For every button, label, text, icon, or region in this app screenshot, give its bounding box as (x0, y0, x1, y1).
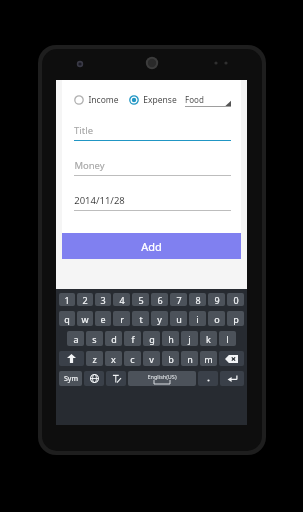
button[interactable]: c (124, 351, 141, 366)
staticText: j (188, 333, 191, 345)
staticText: u (176, 313, 182, 325)
button[interactable]: b (162, 351, 179, 366)
button[interactable]: s (86, 331, 103, 346)
button[interactable]: z (86, 351, 103, 366)
staticText: t (139, 313, 143, 325)
staticText: i (196, 313, 199, 325)
staticText: y (157, 313, 162, 325)
button[interactable]: Backspace (219, 351, 244, 366)
button[interactable]: y (151, 311, 168, 326)
staticText: z (92, 353, 97, 365)
staticText: k (206, 333, 211, 345)
staticText: f (131, 333, 135, 345)
staticText: l (226, 333, 229, 345)
button[interactable]: v (143, 351, 160, 366)
staticText: 5 (138, 294, 144, 306)
button[interactable]: 7 (170, 293, 187, 306)
staticText: 2 (82, 294, 88, 306)
button[interactable]: Handwriting (106, 371, 126, 386)
staticText: g (149, 333, 155, 345)
staticText: q (64, 313, 70, 325)
staticText: n (187, 353, 193, 365)
button[interactable]: 5 (132, 293, 149, 306)
staticText: p (233, 313, 239, 325)
button[interactable]: Shift (59, 351, 84, 366)
button[interactable]: 3 (95, 293, 111, 306)
staticText: 6 (157, 294, 163, 306)
button[interactable]: g (143, 331, 160, 346)
button[interactable]: 2 (77, 293, 93, 306)
button[interactable]: Food (185, 93, 231, 107)
button[interactable]: w (77, 311, 93, 326)
staticText: Title (74, 124, 93, 137)
staticText: English(US) (147, 373, 177, 380)
staticText: w (81, 313, 89, 325)
button[interactable]: j (181, 331, 198, 346)
button[interactable]: 8 (189, 293, 206, 306)
staticText: v (149, 353, 154, 365)
staticText: Add (141, 239, 162, 254)
button[interactable]: Income (74, 94, 119, 106)
button[interactable]: 9 (208, 293, 225, 306)
button[interactable]: Title (74, 124, 231, 141)
staticText: c (130, 353, 135, 365)
button[interactable]: Expense (129, 94, 177, 106)
button[interactable]: 6 (151, 293, 168, 306)
staticText: Income (88, 94, 119, 106)
staticText: 2014/11/28 (74, 194, 125, 207)
button[interactable]: m (200, 351, 217, 366)
button[interactable]: i (189, 311, 206, 326)
button[interactable]: q (59, 311, 75, 326)
button[interactable]: o (208, 311, 225, 326)
staticText: 4 (119, 294, 125, 306)
button[interactable]: Space (128, 371, 196, 386)
staticText: d (111, 333, 117, 345)
staticText: 8 (195, 294, 201, 306)
button[interactable]: e (95, 311, 111, 326)
button[interactable]: Language (84, 371, 104, 386)
button[interactable]: Period (198, 371, 218, 386)
button[interactable]: 4 (113, 293, 130, 306)
button[interactable]: 0 (227, 293, 244, 306)
staticText: 0 (233, 294, 239, 306)
button[interactable]: k (200, 331, 217, 346)
staticText: a (73, 333, 79, 345)
staticText: Expense (143, 94, 177, 106)
button[interactable]: p (227, 311, 244, 326)
button[interactable]: 2014/11/28 (74, 194, 231, 211)
staticText: m (204, 353, 213, 365)
staticText: x (111, 353, 116, 365)
button[interactable]: l (219, 331, 236, 346)
button[interactable]: f (124, 331, 141, 346)
button[interactable]: Money (74, 159, 231, 176)
staticText: 3 (100, 294, 106, 306)
staticText: Money (74, 159, 105, 172)
staticText: Sym (64, 374, 78, 384)
button[interactable]: x (105, 351, 122, 366)
staticText: r (120, 313, 124, 325)
button[interactable]: n (181, 351, 198, 366)
staticText: e (100, 313, 106, 325)
button[interactable]: a (67, 331, 84, 346)
staticText: 1 (64, 294, 70, 306)
button[interactable]: 1 (59, 293, 75, 306)
button[interactable]: h (162, 331, 179, 346)
staticText: s (92, 333, 97, 345)
staticText: h (168, 333, 174, 345)
button[interactable]: d (105, 331, 122, 346)
staticText: Food (185, 94, 204, 105)
button[interactable]: r (113, 311, 130, 326)
button[interactable]: Sym (59, 371, 82, 386)
staticText: 7 (176, 294, 182, 306)
staticText: b (168, 353, 174, 365)
staticText: o (214, 313, 220, 325)
button[interactable]: t (132, 311, 149, 326)
button[interactable]: Add (62, 233, 241, 259)
button[interactable]: u (170, 311, 187, 326)
button[interactable]: Enter (220, 371, 244, 386)
staticText: 9 (214, 294, 220, 306)
